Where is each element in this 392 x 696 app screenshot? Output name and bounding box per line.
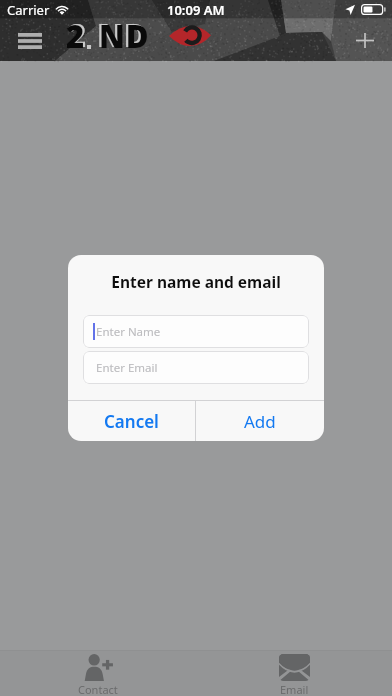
button[interactable]: Enter Email bbox=[83, 351, 309, 384]
staticText: 10:09 AM bbox=[167, 1, 225, 19]
staticText: Email bbox=[280, 682, 309, 696]
staticText: Enter Email bbox=[96, 360, 158, 376]
staticText: Add bbox=[244, 410, 276, 433]
staticText: 2 bbox=[66, 15, 86, 56]
staticText: 2 bbox=[68, 14, 88, 55]
staticText: ND bbox=[97, 14, 148, 55]
staticText: Contact bbox=[78, 682, 118, 696]
button[interactable]: Add bbox=[196, 401, 324, 441]
button[interactable]: Add bbox=[343, 20, 387, 61]
button[interactable]: Menu bbox=[8, 20, 52, 61]
button[interactable]: Enter Name bbox=[83, 315, 309, 348]
staticText: Carrier bbox=[7, 1, 50, 19]
button[interactable]: Email bbox=[196, 650, 392, 696]
staticText: ND bbox=[99, 15, 150, 56]
staticText: Enter name and email bbox=[68, 271, 324, 292]
button[interactable]: Cancel bbox=[68, 401, 195, 441]
staticText: Enter Name bbox=[96, 324, 161, 340]
button[interactable]: Contact bbox=[0, 650, 196, 696]
staticText: Cancel bbox=[104, 410, 159, 433]
